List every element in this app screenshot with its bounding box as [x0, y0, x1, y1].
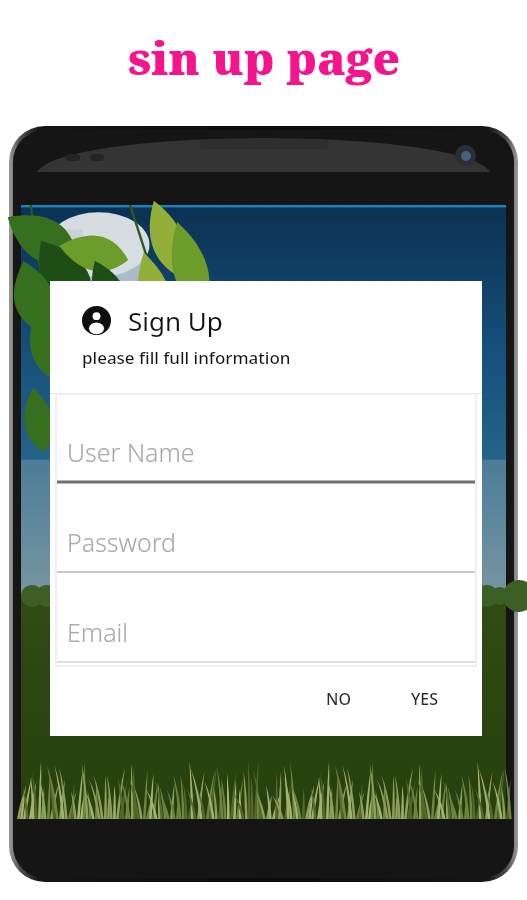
- button[interactable]: Password: [56, 484, 476, 574]
- staticText: YES: [411, 688, 439, 710]
- staticText: NO: [326, 688, 351, 710]
- staticText: sin up page: [128, 26, 400, 89]
- button[interactable]: User Name: [56, 394, 476, 484]
- staticText: Sign Up: [128, 303, 223, 338]
- other: Account: [82, 306, 111, 335]
- staticText: please fill full information: [82, 346, 291, 369]
- staticText: User Name: [67, 435, 195, 469]
- button[interactable]: NO: [320, 680, 357, 718]
- staticText: Password: [67, 525, 176, 559]
- staticText: Email: [67, 615, 129, 649]
- button[interactable]: Email: [56, 574, 476, 664]
- button[interactable]: YES: [405, 680, 445, 718]
